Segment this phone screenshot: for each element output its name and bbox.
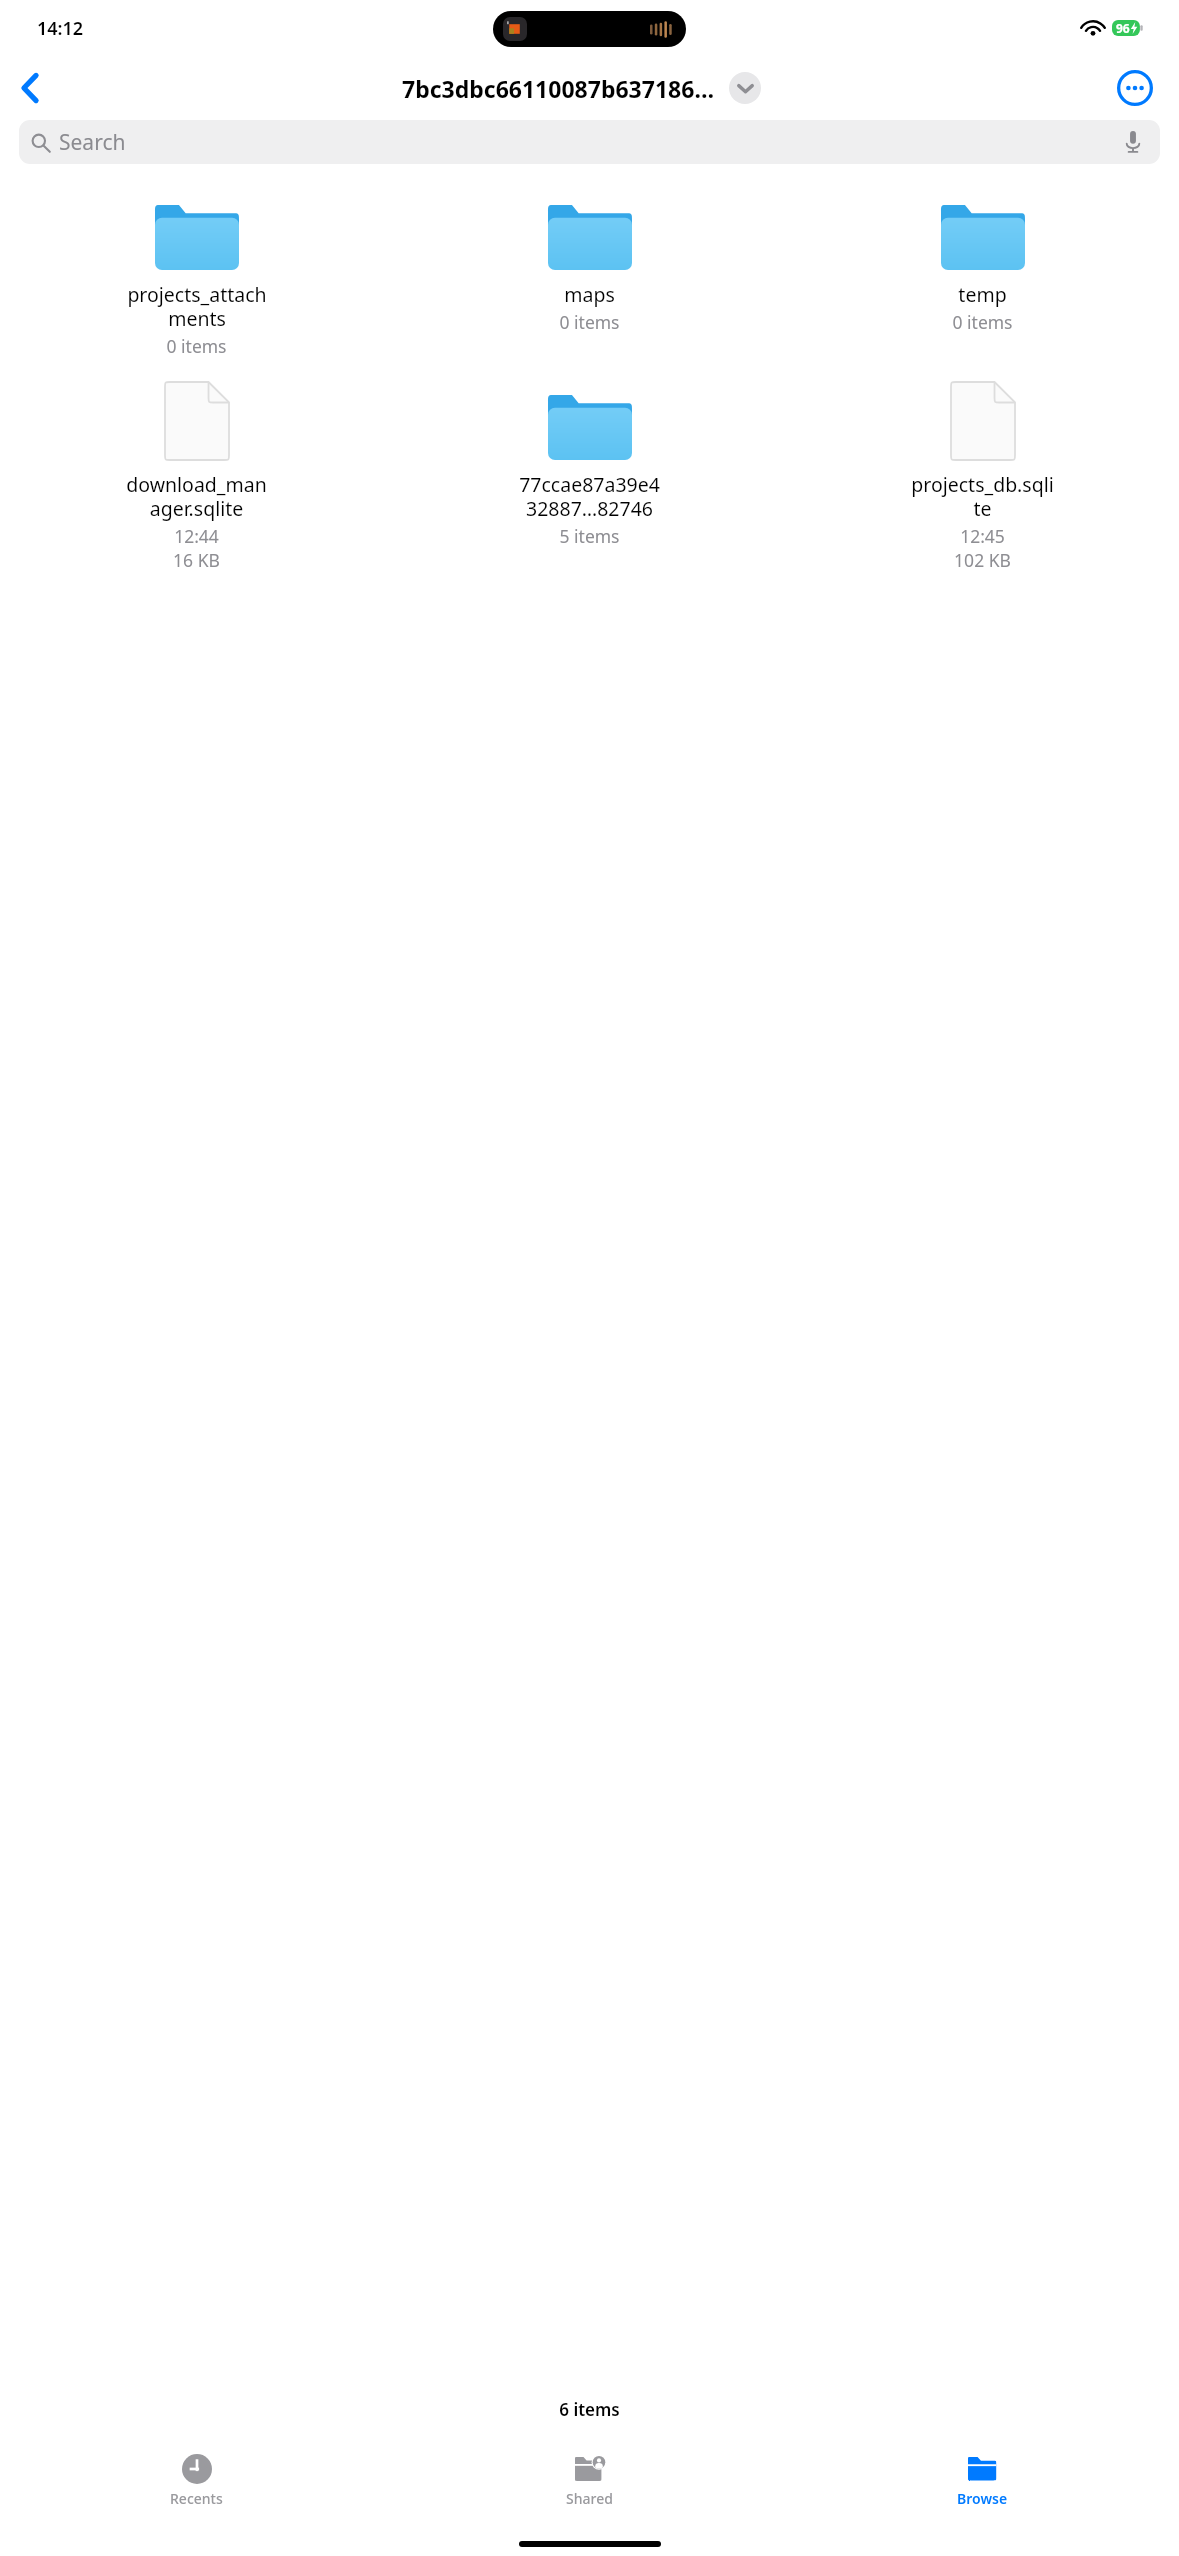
button[interactable]: projects_db.sqli te — [786, 380, 1179, 572]
staticText: Search — [59, 128, 126, 157]
staticText: download_man ager.sqlite — [126, 471, 267, 522]
button[interactable]: Folder options — [729, 72, 761, 104]
button[interactable]: 77ccae87a39e4 32887…82746 — [393, 380, 786, 548]
staticText: maps — [564, 281, 615, 308]
button[interactable]: Shared — [393, 2448, 786, 2520]
staticText: 7bc3dbc66110087b637186… — [402, 73, 715, 104]
staticText: 0 items — [952, 310, 1013, 334]
button[interactable]: download_man ager.sqlite — [0, 380, 393, 572]
staticText: 12:45 — [960, 524, 1005, 548]
button[interactable]: Browse — [786, 2448, 1179, 2520]
staticText: 102 KB — [954, 548, 1011, 572]
staticText: 77ccae87a39e4 32887…82746 — [519, 471, 660, 522]
button[interactable]: More actions — [1117, 70, 1153, 106]
staticText: 12:44 — [174, 524, 219, 548]
staticText: 0 items — [559, 310, 620, 334]
button[interactable]: Back — [4, 62, 56, 114]
staticText: 96 — [1116, 20, 1130, 36]
staticText: temp — [958, 281, 1007, 308]
staticText: 6 items — [0, 2398, 1179, 2421]
staticText: Recents — [170, 2489, 223, 2508]
button[interactable]: Recents — [0, 2448, 393, 2520]
staticText: projects_attach ments — [127, 281, 267, 332]
button[interactable]: projects_attach ments — [0, 190, 393, 358]
staticText: Browse — [957, 2489, 1008, 2508]
button[interactable]: temp — [786, 190, 1179, 334]
staticText: projects_db.sqli te — [911, 471, 1054, 522]
staticText: 5 items — [559, 524, 620, 548]
staticText: 0 items — [166, 334, 227, 358]
staticText: Shared — [566, 2489, 613, 2508]
button[interactable]: Voice search — [1119, 128, 1147, 156]
button[interactable]: Search — [19, 120, 1160, 164]
staticText: 14:12 — [37, 16, 84, 41]
button[interactable]: maps — [393, 190, 786, 334]
staticText: 16 KB — [173, 548, 220, 572]
